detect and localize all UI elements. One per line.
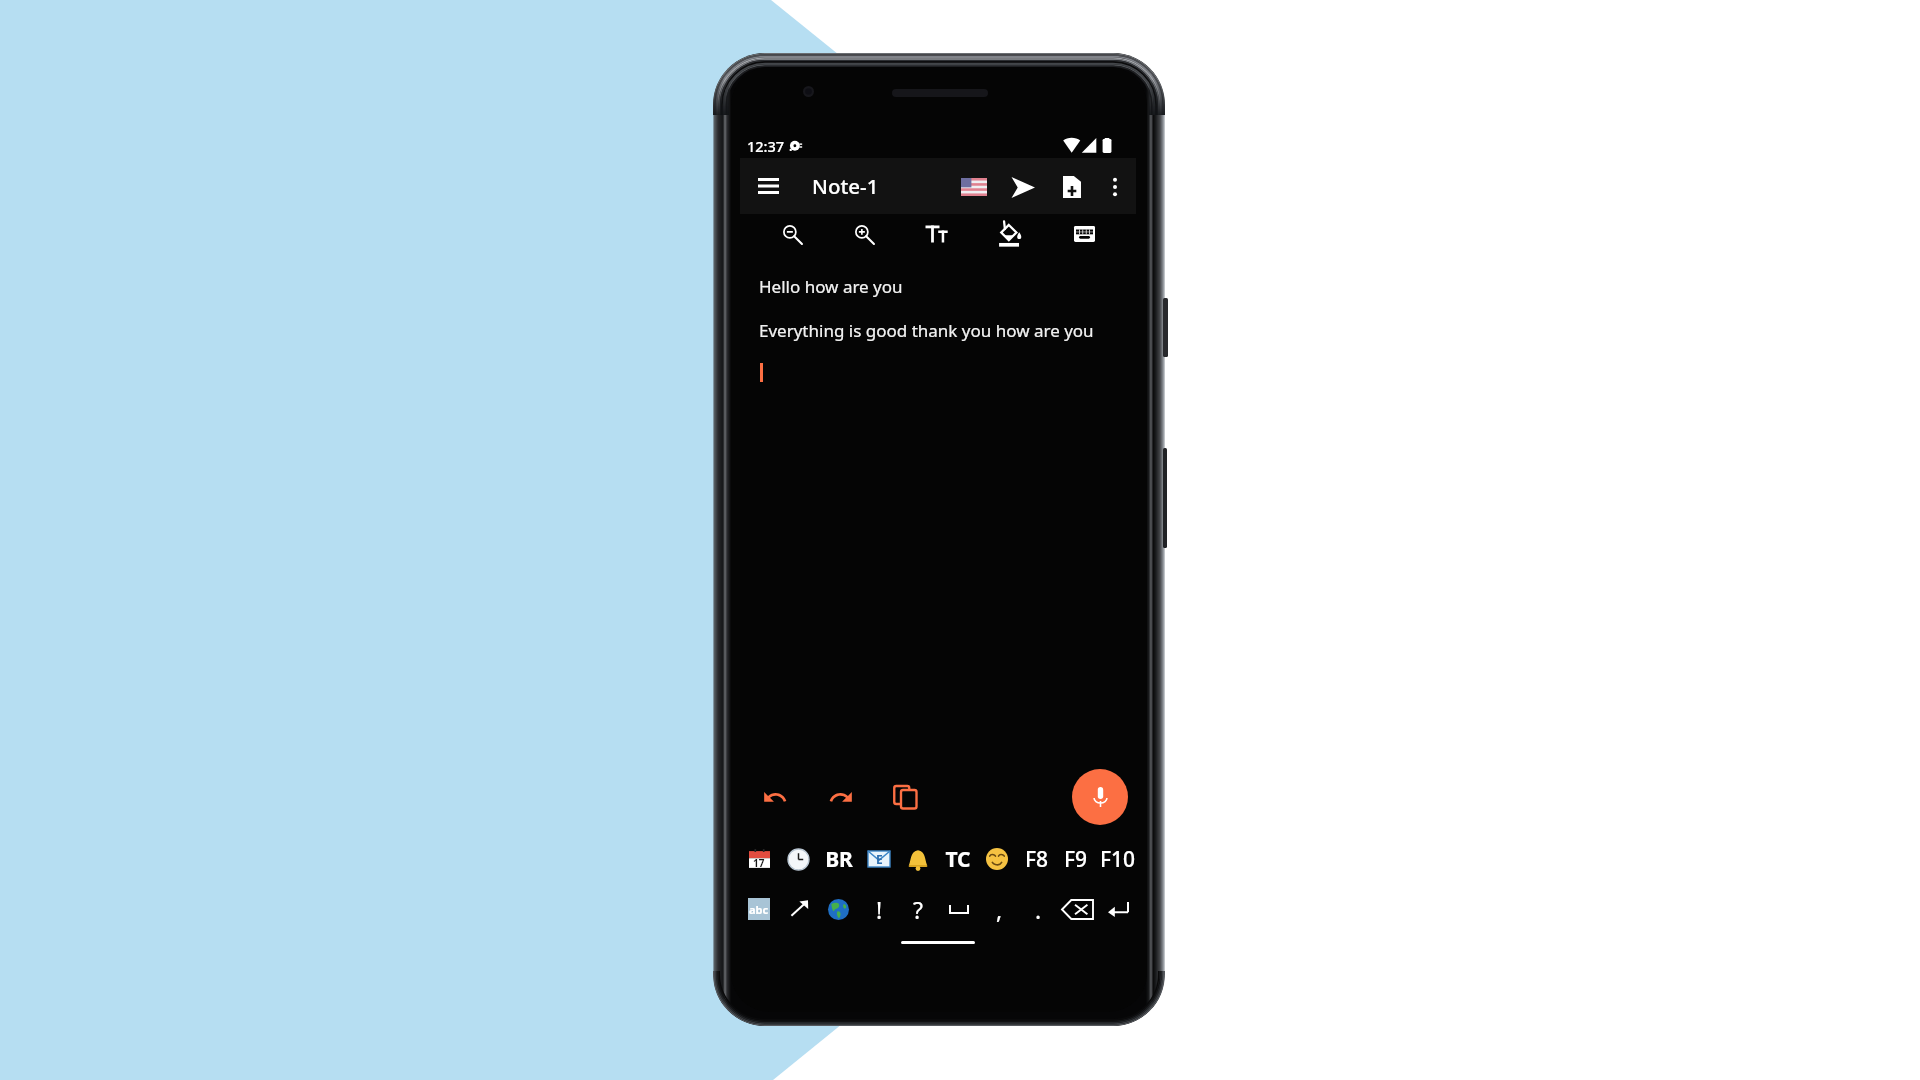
staticText: TC [945, 845, 971, 874]
button[interactable]: Send [1006, 170, 1040, 204]
button[interactable]: ! [860, 890, 898, 928]
button[interactable]: Keyboard [1065, 215, 1103, 253]
button[interactable]: . [1019, 890, 1057, 928]
button[interactable]: abc [740, 890, 778, 928]
button[interactable]: New note [1055, 170, 1089, 204]
button[interactable]: Copy [884, 776, 926, 818]
staticText: abc [749, 902, 769, 917]
button[interactable]: Navigation menu [751, 169, 785, 203]
button[interactable]: Text size [918, 215, 956, 253]
button[interactable]: Alarm [899, 840, 937, 878]
staticText: Everything is good thank you how are you [759, 319, 1094, 342]
staticText: Note-1 [812, 172, 879, 200]
button[interactable]: Enter [1099, 890, 1137, 928]
staticText: F8 [1025, 845, 1049, 874]
button[interactable]: Email [860, 840, 898, 878]
button[interactable]: Zoom in [845, 215, 883, 253]
staticText: F10 [1100, 845, 1136, 874]
button[interactable]: Voice input [1072, 769, 1128, 825]
button[interactable]: Undo [754, 776, 796, 818]
staticText: , [996, 894, 1003, 925]
button[interactable]: Fill colour [992, 215, 1030, 253]
staticText: ! [876, 894, 883, 925]
staticText: Hello how are you [759, 275, 903, 298]
staticText: 12:37 [747, 136, 785, 156]
button[interactable]: Language [957, 170, 991, 204]
button[interactable]: Tab [780, 890, 818, 928]
button[interactable]: Note text [731, 259, 1147, 729]
button[interactable]: Calendar [740, 840, 778, 878]
staticText: BR [825, 845, 853, 874]
button[interactable]: BR [820, 840, 858, 878]
button[interactable]: Backspace [1058, 890, 1096, 928]
button[interactable]: F9 [1057, 840, 1095, 878]
button[interactable]: More options [1098, 170, 1132, 204]
button[interactable]: , [980, 890, 1018, 928]
staticText: 17 [753, 856, 765, 870]
button[interactable]: TC [939, 840, 977, 878]
staticText: ? [913, 894, 923, 925]
button[interactable]: F8 [1018, 840, 1056, 878]
button[interactable]: Emoji [978, 840, 1016, 878]
button[interactable]: Space [940, 890, 978, 928]
button[interactable]: Globe [819, 890, 857, 928]
staticText: . [1035, 894, 1042, 925]
staticText: E [876, 851, 883, 867]
staticText: F9 [1064, 845, 1088, 874]
button[interactable]: F10 [1099, 840, 1137, 878]
button[interactable]: Zoom out [773, 215, 811, 253]
button[interactable]: ? [899, 890, 937, 928]
button[interactable]: Clock [779, 840, 817, 878]
button[interactable]: Redo [820, 776, 862, 818]
